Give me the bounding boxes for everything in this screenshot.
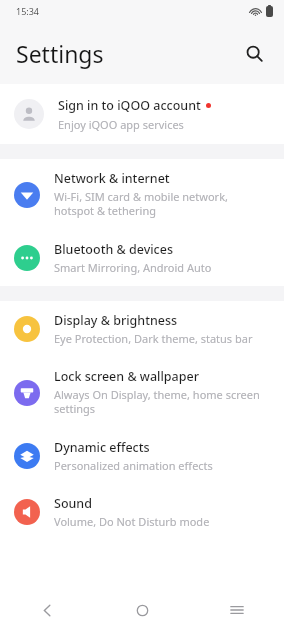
staticText: Network & internet [54,170,170,187]
staticText: Enjoy iQOO app services [58,117,184,132]
button[interactable]: Home [118,590,166,630]
staticText: 15:34 [16,5,40,17]
staticText: Smart Mirroring, Android Auto [54,260,212,275]
staticText: Personalized animation effects [54,458,213,473]
staticText: Display & brightness [54,312,178,329]
staticText: Bluetooth & devices [54,241,173,258]
button[interactable]: Back [23,590,71,630]
button[interactable]: Dynamic effects [0,428,284,484]
staticText: Wi-Fi, SIM card & mobile network, hotspo… [54,189,268,219]
button[interactable]: Sign in to iQOO account [0,84,284,144]
button[interactable]: Sound [0,484,284,540]
staticText: Sound [54,495,92,512]
button[interactable]: Bluetooth & devices [0,230,284,286]
button[interactable]: Lock screen & wallpaper [0,357,284,428]
button[interactable]: Display & brightness [0,301,284,357]
button[interactable]: Recent apps [213,590,261,630]
staticText: Dynamic effects [54,439,150,456]
staticText: Eye Protection, Dark theme, status bar [54,331,253,346]
staticText: Volume, Do Not Disturb mode [54,514,210,529]
button[interactable]: Search [234,33,274,73]
staticText: Sign in to iQOO account [58,97,201,114]
staticText: Lock screen & wallpaper [54,368,199,385]
staticText: Always On Display, theme, home screen se… [54,387,268,417]
staticText: Settings [16,38,104,69]
button[interactable]: Network & internet [0,159,284,230]
